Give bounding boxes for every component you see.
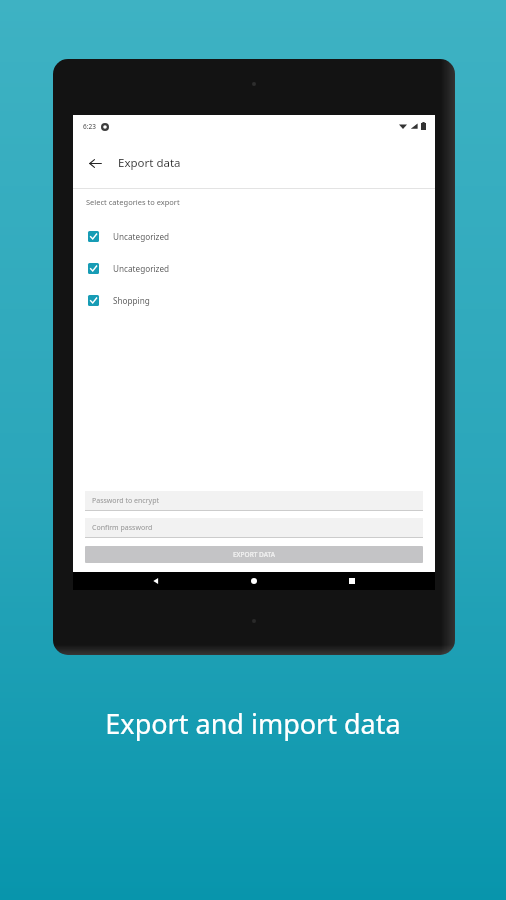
staticText: Password to encrypt <box>92 496 159 506</box>
staticText: Uncategorized <box>113 263 170 274</box>
button[interactable]: Home <box>239 572 269 590</box>
staticText: Confirm password <box>92 523 153 533</box>
staticText: EXPORT DATA <box>233 550 275 559</box>
staticText: Export and import data <box>105 705 401 742</box>
button[interactable]: Recent apps <box>337 572 367 590</box>
button[interactable]: Back <box>141 572 171 590</box>
button[interactable]: Confirm password <box>85 518 423 538</box>
button[interactable]: Uncategorized <box>73 252 435 284</box>
staticText: Select categories to export <box>86 197 180 207</box>
button[interactable]: Password to encrypt <box>85 491 423 511</box>
staticText: Uncategorized <box>113 231 170 242</box>
staticText: 6:23 <box>83 122 96 131</box>
button[interactable]: EXPORT DATA <box>85 546 423 563</box>
button[interactable]: Shopping <box>73 284 435 316</box>
button[interactable]: Uncategorized <box>73 220 435 252</box>
staticText: Export data <box>118 155 181 171</box>
staticText: Shopping <box>113 295 150 306</box>
button[interactable]: Back <box>81 149 109 177</box>
